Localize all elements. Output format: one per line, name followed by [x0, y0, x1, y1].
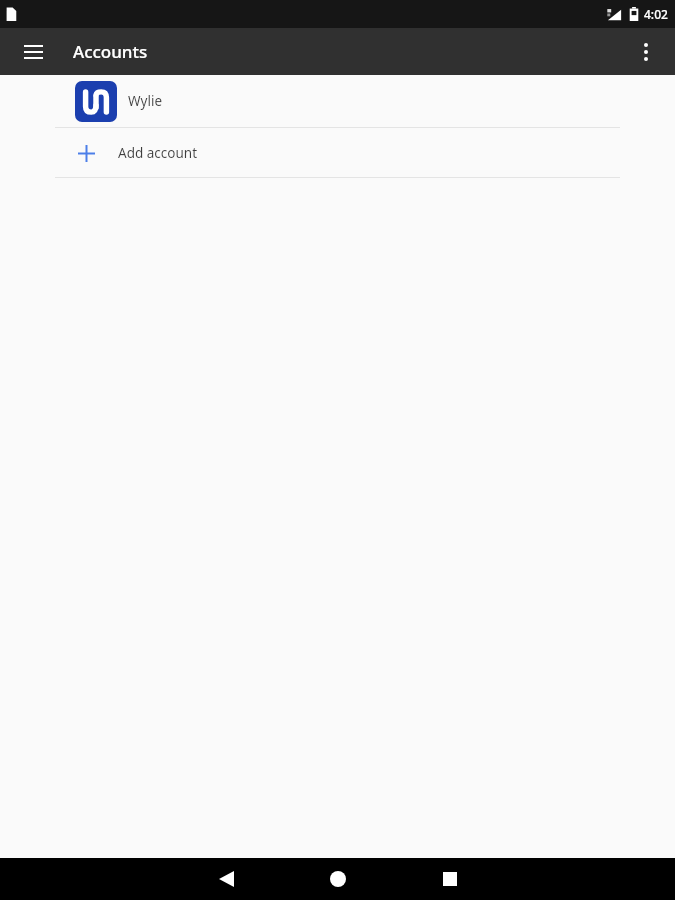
staticText: Add account: [118, 144, 198, 162]
button[interactable]: Wylie: [0, 75, 675, 127]
button[interactable]: Home: [282, 858, 394, 900]
button[interactable]: Recent apps: [394, 858, 506, 900]
staticText: Wylie: [128, 92, 163, 110]
button[interactable]: More options: [623, 29, 669, 75]
button[interactable]: Add account: [0, 128, 675, 177]
staticText: 4:02: [644, 6, 668, 22]
button[interactable]: Open navigation drawer: [10, 29, 56, 75]
button[interactable]: Back: [170, 858, 282, 900]
staticText: Accounts: [73, 40, 148, 63]
